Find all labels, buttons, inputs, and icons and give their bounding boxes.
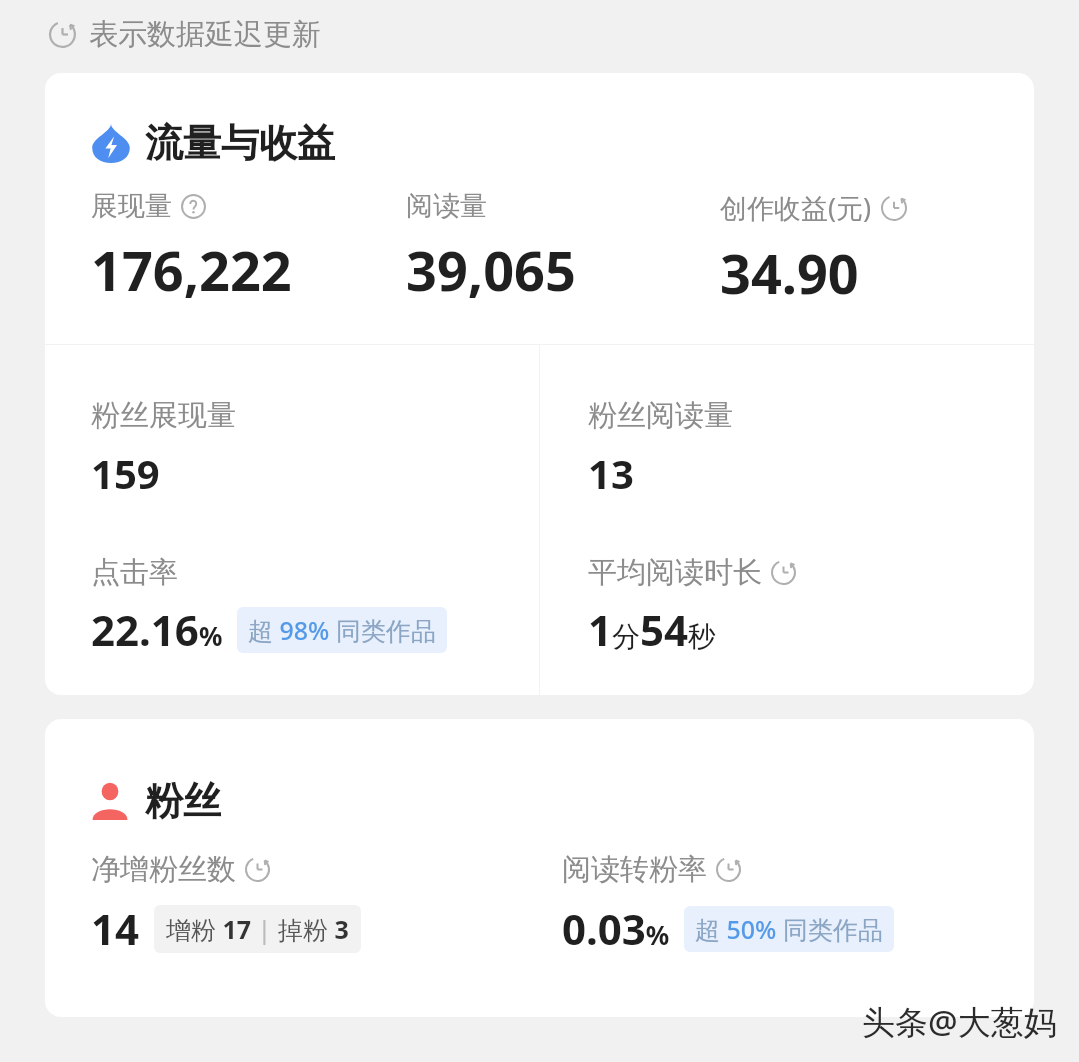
button[interactable]: 表示数据延迟更新: [48, 12, 321, 57]
staticText: 点击率: [91, 554, 178, 591]
staticText: 粉丝阅读量: [588, 397, 733, 434]
button[interactable]: 流量图标: [45, 73, 1034, 189]
staticText: 阅读量: [406, 189, 487, 223]
staticText: 超 50% 同类作品: [695, 912, 883, 946]
staticText: 159: [91, 446, 160, 500]
staticText: 表示数据延迟更新: [89, 16, 321, 53]
staticText: 平均阅读时长: [588, 554, 762, 591]
staticText: 超 98% 同类作品: [248, 613, 436, 647]
button[interactable]: 增粉 17 | 掉粉 3: [154, 905, 361, 953]
other: 粉丝图标: [91, 782, 129, 820]
button[interactable]: 超 98% 同类作品: [237, 607, 447, 653]
other: 流量图标: [91, 123, 131, 163]
staticText: 13: [588, 446, 634, 500]
staticText: 阅读转粉率: [562, 851, 707, 888]
staticText: 展现量: [91, 189, 172, 223]
staticText: 粉丝展现量: [91, 397, 236, 434]
staticText: 34.90: [720, 236, 859, 310]
staticText: 0.03%: [562, 900, 670, 957]
staticText: 净增粉丝数: [91, 851, 236, 888]
staticText: 39,065: [406, 233, 576, 307]
staticText: 粉丝: [145, 777, 221, 825]
staticText: 增粉 17 | 掉粉 3: [166, 912, 349, 946]
staticText: 22.16%: [91, 601, 223, 658]
staticText: 流量与收益: [145, 119, 335, 167]
staticText: 创作收益(元): [720, 189, 872, 226]
staticText: 14: [91, 900, 140, 957]
button[interactable]: 粉丝图标: [45, 719, 1034, 851]
button[interactable]: 超 50% 同类作品: [684, 906, 894, 952]
other: 说明: [180, 193, 207, 220]
staticText: 176,222: [91, 233, 292, 307]
staticText: 头条@大葱妈: [862, 999, 1057, 1044]
staticText: 1分54秒: [588, 601, 717, 658]
